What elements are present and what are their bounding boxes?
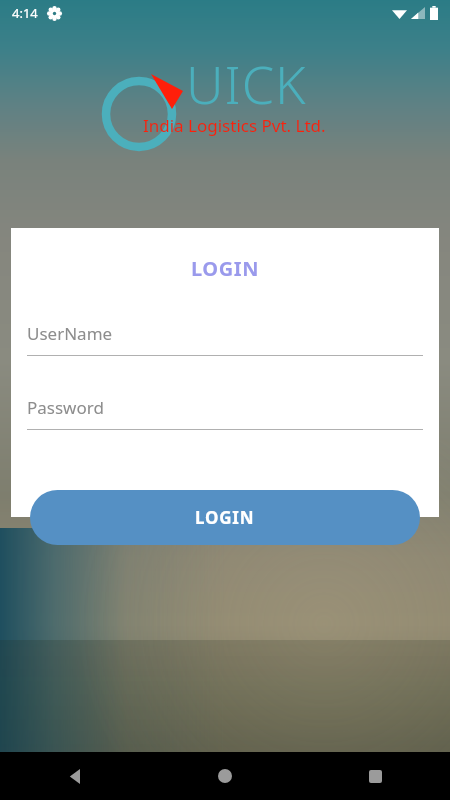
staticText: India Logistics Pvt. Ltd. <box>143 114 326 137</box>
staticText: 4:14 <box>12 4 38 22</box>
button[interactable]: Back <box>0 752 150 800</box>
button[interactable]: Password <box>27 396 423 430</box>
button[interactable]: Home <box>150 752 300 800</box>
staticText: UserName <box>27 322 113 345</box>
staticText: LOGIN <box>195 506 255 529</box>
staticText: LOGIN <box>11 255 439 282</box>
button[interactable]: UserName <box>27 322 423 356</box>
staticText: Password <box>27 396 104 419</box>
button[interactable]: Recent apps <box>300 752 450 800</box>
staticText: UICK <box>186 48 307 119</box>
button[interactable]: LOGIN <box>30 490 420 545</box>
